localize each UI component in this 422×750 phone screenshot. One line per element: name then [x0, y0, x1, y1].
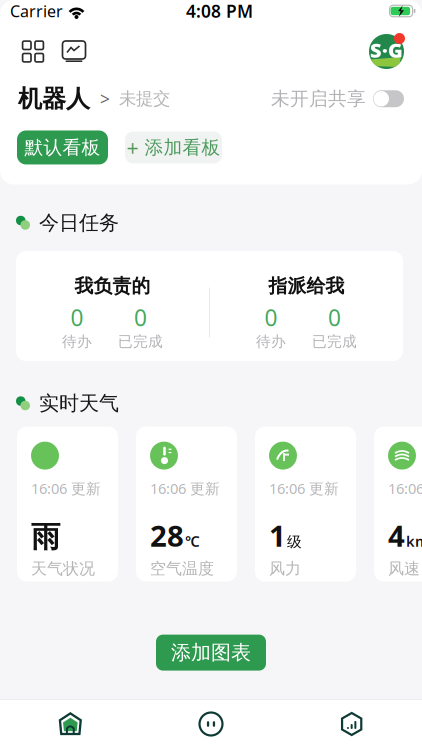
staticText: 1 [269, 516, 286, 555]
staticText: Carrier [10, 0, 63, 22]
staticText: 实时天气 [39, 391, 119, 416]
staticText: > [100, 87, 110, 110]
staticText: 4 [388, 516, 405, 555]
staticText: 16:06 更新 [150, 479, 220, 498]
staticText: 0 [70, 302, 83, 332]
button[interactable]: + [125, 131, 222, 163]
staticText: 待办 [256, 333, 286, 351]
staticText: 已完成 [312, 333, 357, 351]
staticText: 风速 [388, 559, 420, 579]
staticText: 机器人 [18, 84, 90, 113]
staticText: 16:06 更新 [31, 479, 101, 498]
button[interactable]: Data [281, 711, 422, 737]
staticText: 指派给我 [268, 274, 344, 297]
staticText: 4:08 PM [186, 0, 253, 22]
button[interactable]: Assistant [141, 711, 281, 737]
staticText: 0 [134, 302, 147, 332]
button[interactable]: 添加图表 [156, 635, 266, 671]
staticText: 天气状况 [31, 559, 95, 579]
staticText: + [126, 133, 138, 162]
staticText: 空气温度 [150, 559, 214, 579]
staticText: 添加图表 [171, 640, 251, 665]
staticText: 风力 [269, 559, 301, 579]
staticText: 待办 [62, 333, 92, 351]
button[interactable]: Monitor [59, 36, 89, 66]
staticText: km [406, 531, 422, 551]
staticText: 0 [264, 302, 277, 332]
staticText: 添加看板 [144, 136, 220, 159]
staticText: 16:06 更新 [269, 479, 339, 498]
button[interactable]: 未开启共享 [271, 87, 404, 110]
staticText: S·G [370, 37, 403, 63]
staticText: 雨 [31, 519, 60, 555]
staticText: 16:06 更新 [388, 479, 422, 498]
staticText: 级 [287, 533, 302, 551]
button[interactable]: Home [0, 711, 141, 737]
staticText: ℃ [185, 531, 200, 551]
button[interactable]: Dashboard grid [18, 36, 48, 66]
staticText: 我负责的 [74, 274, 150, 297]
staticText: 未提交 [119, 88, 170, 109]
staticText: 已完成 [118, 333, 163, 351]
button[interactable]: 默认看板 [17, 130, 108, 164]
staticText: 0 [328, 302, 341, 332]
staticText: 今日任务 [39, 210, 119, 235]
staticText: 28 [150, 516, 184, 555]
staticText: 未开启共享 [271, 87, 366, 110]
staticText: 默认看板 [24, 136, 100, 159]
button[interactable]: Profile [368, 33, 405, 70]
